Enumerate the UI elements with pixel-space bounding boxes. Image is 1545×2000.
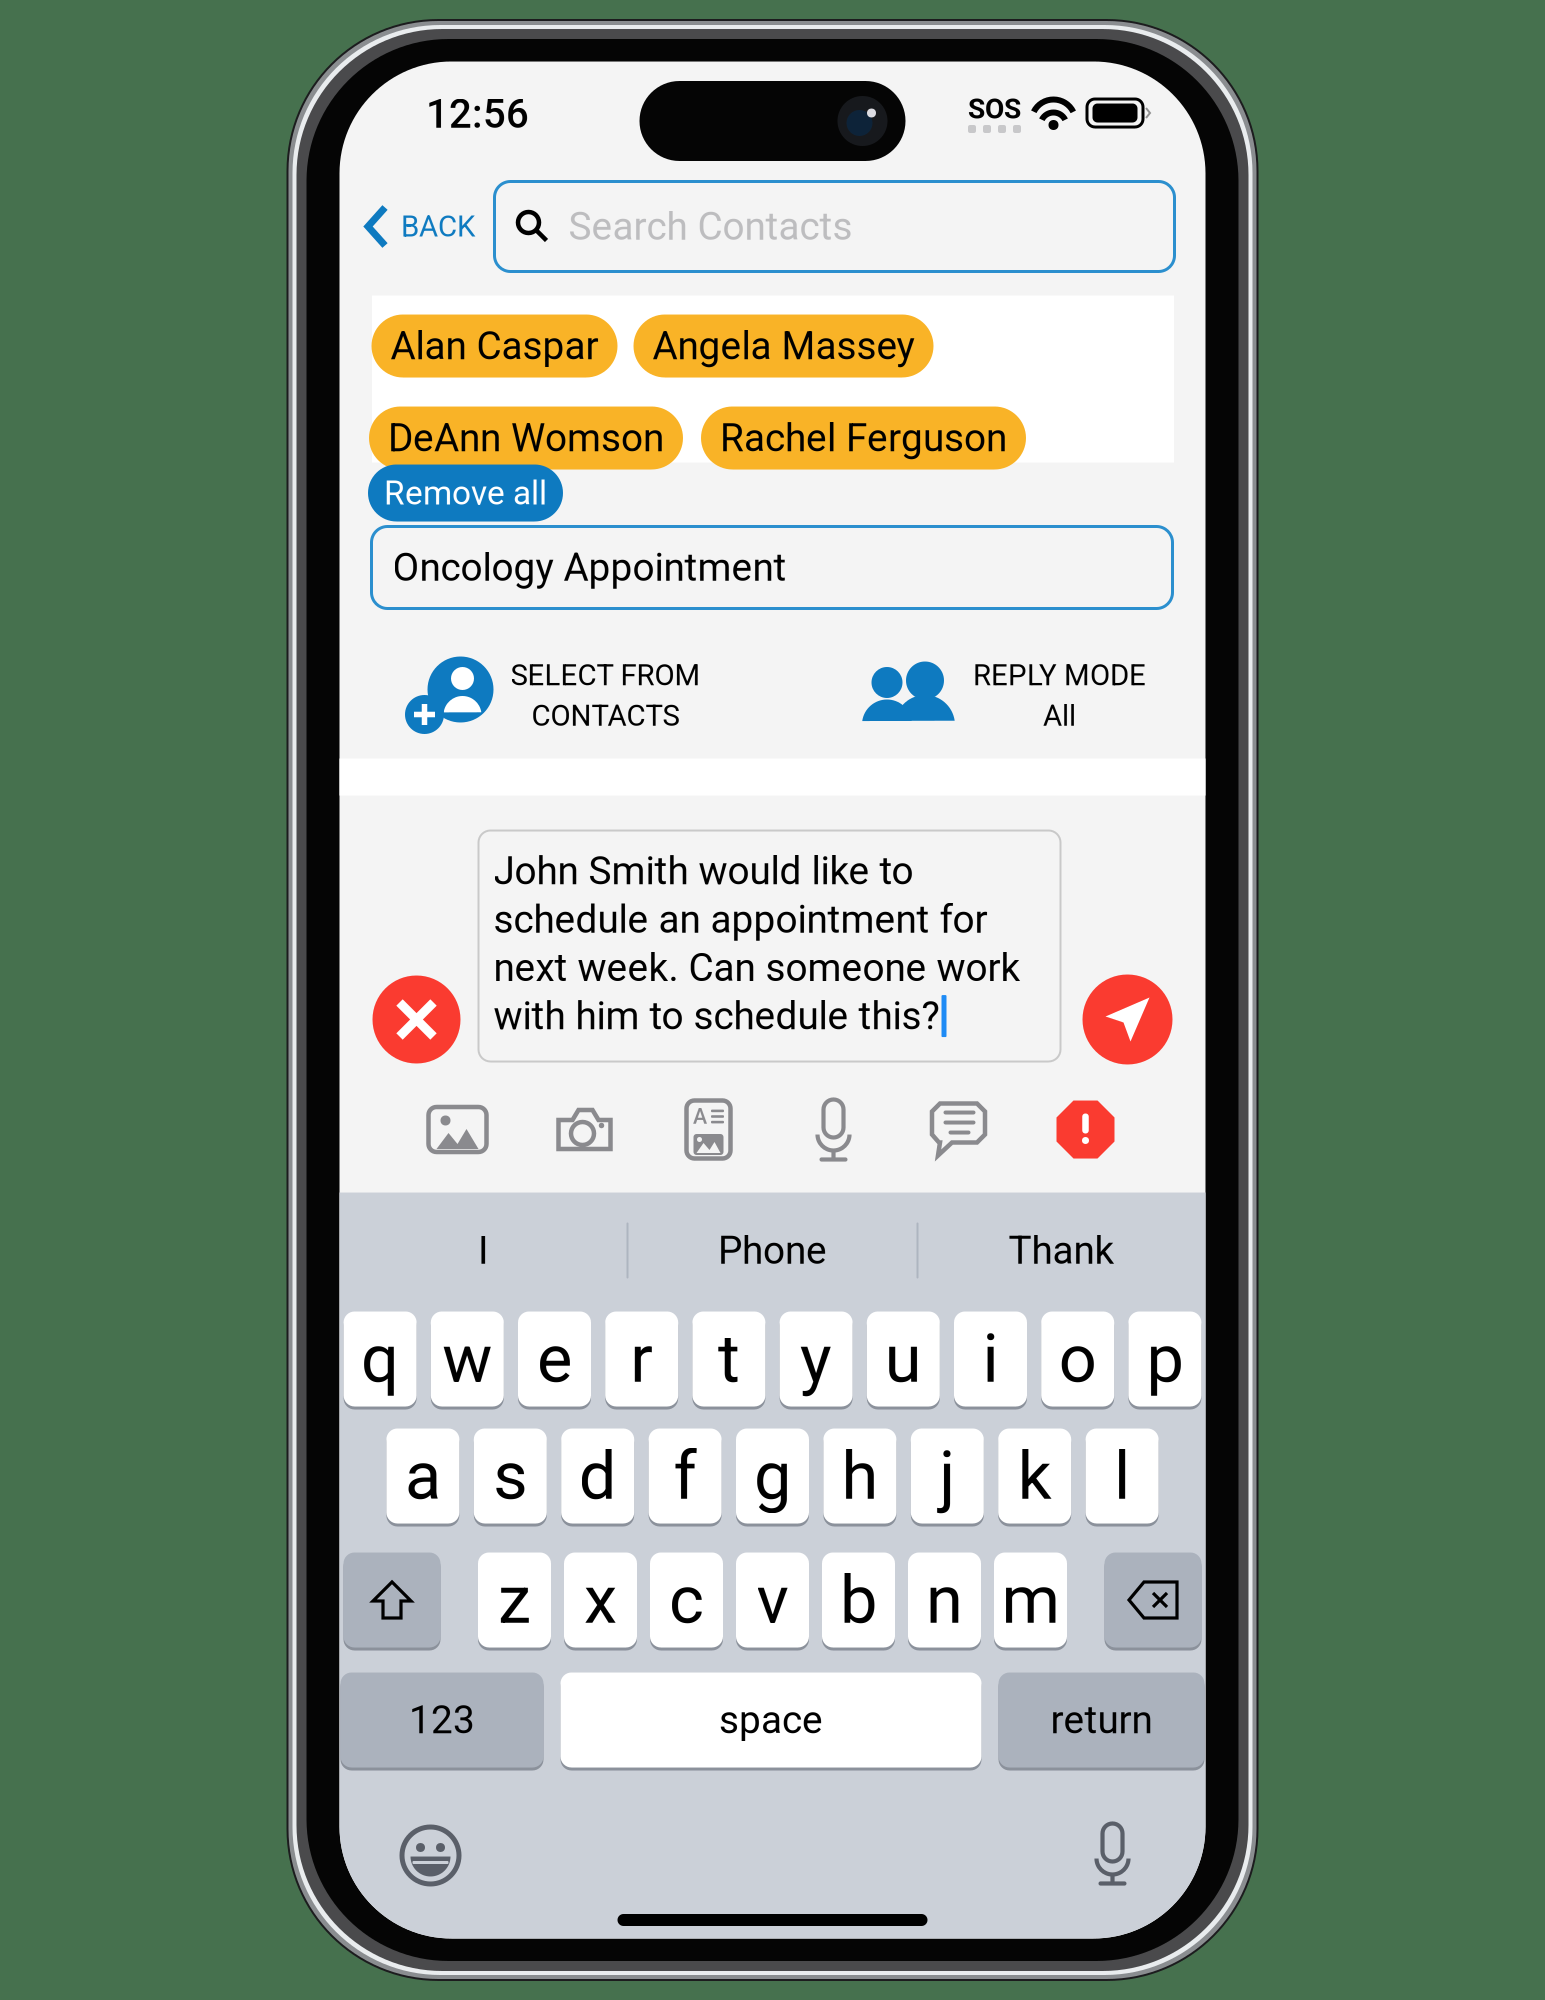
staticText: v [756, 1561, 788, 1639]
button[interactable]: i [954, 1310, 1027, 1408]
button[interactable]: b [822, 1551, 895, 1649]
button[interactable]: 123 [340, 1671, 543, 1769]
button[interactable]: Cancel [372, 975, 460, 1063]
staticText: SOS [968, 93, 1021, 125]
button[interactable]: Emoji [385, 1810, 475, 1900]
staticText: c [669, 1561, 704, 1639]
button[interactable]: u [867, 1310, 940, 1408]
staticText: schedule an appointment for [493, 897, 987, 942]
button[interactable]: Alan Caspar [371, 314, 617, 377]
staticText: o [1059, 1320, 1097, 1398]
button[interactable]: Rachel Ferguson [701, 406, 1026, 469]
button[interactable]: Photos [420, 1092, 494, 1166]
button[interactable]: Camera [547, 1092, 621, 1166]
staticText: q [361, 1320, 399, 1398]
staticText: Alan Caspar [390, 323, 598, 369]
staticText: r [630, 1320, 653, 1398]
button[interactable]: g [736, 1427, 809, 1525]
button[interactable]: j [911, 1427, 984, 1525]
button[interactable]: Dictate [1067, 1808, 1157, 1898]
staticText: i [982, 1320, 998, 1398]
button[interactable]: Delete [1104, 1551, 1201, 1649]
button[interactable]: e [518, 1310, 591, 1408]
staticText: l [1114, 1437, 1130, 1515]
button[interactable]: l [1086, 1427, 1159, 1525]
staticText: CONTACTS [531, 698, 679, 733]
staticText: m [1001, 1561, 1059, 1639]
button[interactable]: x [564, 1551, 637, 1649]
button[interactable]: q [344, 1310, 417, 1408]
staticText: u [885, 1320, 922, 1398]
staticText: next week. Can someone work [493, 945, 1020, 990]
staticText: All [1043, 698, 1076, 733]
staticText: d [579, 1437, 617, 1515]
button[interactable]: I [340, 1197, 627, 1304]
button[interactable]: a [386, 1427, 459, 1525]
button[interactable]: Quick replies [921, 1092, 995, 1166]
button[interactable]: SELECT FROM [402, 650, 700, 740]
staticText: with him to schedule this? [493, 993, 939, 1039]
button[interactable]: c [650, 1551, 723, 1649]
staticText: 123 [409, 1697, 475, 1743]
button[interactable]: Angela Massey [633, 314, 933, 377]
button[interactable]: t [692, 1310, 765, 1408]
button[interactable]: REPLY MODE [865, 650, 1146, 740]
staticText: Rachel Ferguson [720, 415, 1007, 461]
staticText: I [478, 1228, 489, 1273]
button[interactable]: space [560, 1671, 981, 1769]
button[interactable]: return [998, 1671, 1204, 1769]
button[interactable]: Remove all [368, 464, 563, 521]
button[interactable]: Urgent [1048, 1092, 1122, 1166]
button[interactable]: z [478, 1551, 551, 1649]
button[interactable]: v [736, 1551, 809, 1649]
staticText: Phone [718, 1228, 827, 1273]
button[interactable]: p [1128, 1310, 1201, 1408]
button[interactable]: f [649, 1427, 722, 1525]
button[interactable]: d [561, 1427, 634, 1525]
button[interactable]: Phone [629, 1197, 915, 1304]
button[interactable]: DeAnn Womson [369, 406, 683, 469]
button[interactable]: w [431, 1310, 504, 1408]
button[interactable]: Thank [918, 1197, 1205, 1304]
staticText: g [754, 1437, 791, 1515]
button[interactable]: Oncology Appointment [371, 526, 1172, 608]
staticText: 12:56 [426, 91, 529, 137]
staticText: space [719, 1697, 823, 1743]
button[interactable]: BACK [344, 181, 495, 271]
button[interactable]: Record audio [796, 1092, 870, 1166]
staticText: return [1050, 1697, 1152, 1743]
staticText: a [405, 1437, 441, 1515]
staticText: DeAnn Womson [388, 415, 664, 461]
staticText: Angela Massey [652, 323, 914, 369]
staticText: s [493, 1437, 527, 1515]
staticText: h [841, 1437, 878, 1515]
staticText: b [840, 1561, 877, 1639]
button[interactable]: Shift [343, 1551, 440, 1649]
staticText: w [442, 1320, 492, 1398]
button[interactable]: Search Contacts [494, 181, 1174, 271]
staticText: John Smith would like to [493, 848, 913, 894]
button[interactable]: m [994, 1551, 1067, 1649]
staticText: Search Contacts [568, 204, 852, 249]
staticText: n [926, 1561, 963, 1639]
staticText: y [800, 1320, 832, 1398]
staticText: Oncology Appointment [392, 545, 786, 590]
staticText: Thank [1008, 1228, 1114, 1273]
button[interactable]: h [823, 1427, 896, 1525]
staticText: SELECT FROM [510, 658, 700, 692]
staticText: k [1018, 1437, 1052, 1515]
staticText: A [693, 1104, 707, 1129]
button[interactable]: y [780, 1310, 853, 1408]
button[interactable]: Send [1082, 974, 1172, 1064]
button[interactable]: Templates [671, 1092, 745, 1166]
button[interactable]: r [605, 1310, 678, 1408]
staticText: t [718, 1320, 740, 1398]
staticText: e [537, 1320, 572, 1398]
staticText: BACK [401, 209, 475, 244]
button[interactable]: n [908, 1551, 981, 1649]
button[interactable]: s [474, 1427, 547, 1525]
button[interactable]: k [998, 1427, 1071, 1525]
staticText: j [939, 1437, 955, 1515]
button[interactable]: o [1041, 1310, 1114, 1408]
staticText: Remove all [384, 473, 547, 513]
